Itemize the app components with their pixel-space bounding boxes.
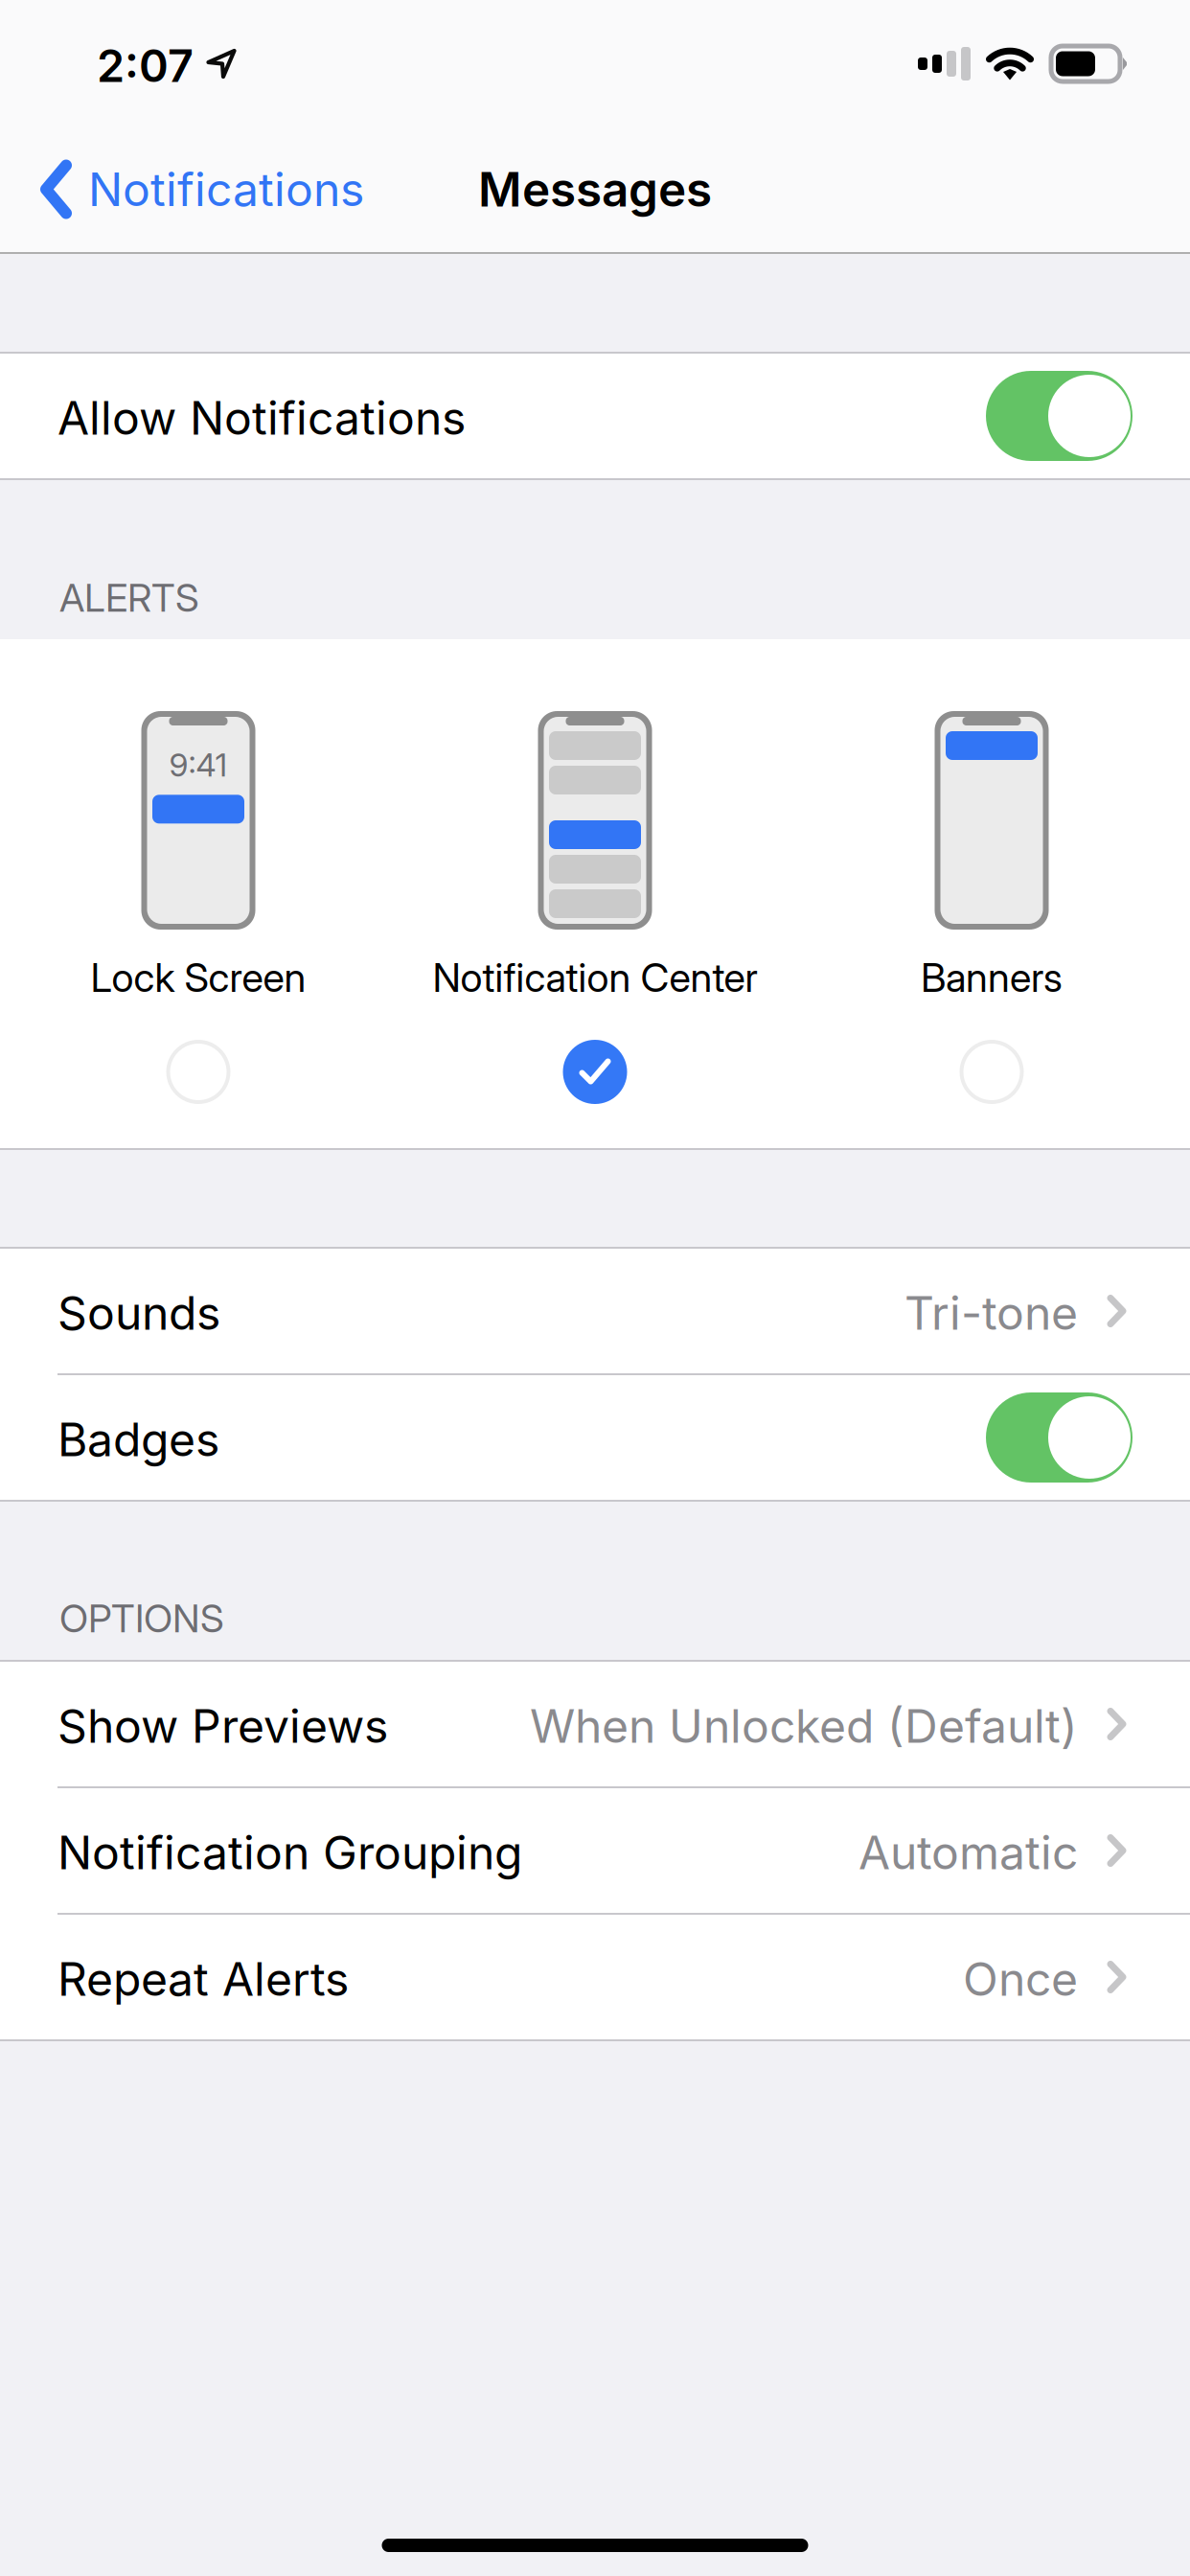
staticText: Notification Center [433, 954, 757, 1001]
staticText: Sounds [57, 1285, 220, 1341]
staticText: 9:41 [169, 746, 228, 784]
button[interactable]: Automatic [0, 1788, 1190, 1913]
staticText: Tri-tone [904, 1285, 1078, 1341]
button[interactable]: Tri-tone [0, 1249, 1190, 1373]
staticText: ALERTS [59, 575, 199, 621]
button[interactable]: Not selected [0, 711, 397, 1104]
button[interactable]: On [0, 1375, 1190, 1500]
button[interactable]: On [0, 354, 1190, 478]
staticText: Repeat Alerts [57, 1951, 349, 2007]
staticText: Lock Screen [91, 954, 306, 1001]
staticText: Badges [57, 1412, 219, 1467]
staticText: Notification Grouping [57, 1825, 522, 1880]
staticText: Allow Notifications [57, 390, 466, 446]
button[interactable]: Selected [397, 711, 793, 1104]
staticText: OPTIONS [59, 1595, 224, 1642]
staticText: Show Previews [57, 1698, 388, 1754]
button[interactable]: Once [0, 1915, 1190, 2039]
button[interactable]: Notifications [0, 137, 387, 242]
staticText: Notifications [88, 161, 364, 217]
staticText: 2:07 [97, 39, 194, 93]
staticText: Messages [478, 161, 712, 218]
staticText: Once [963, 1951, 1078, 2007]
staticText: When Unlocked (Default) [530, 1698, 1078, 1754]
button[interactable]: Not selected [793, 711, 1190, 1104]
staticText: Automatic [858, 1825, 1078, 1880]
button[interactable]: When Unlocked (Default) [0, 1662, 1190, 1786]
staticText: Banners [921, 954, 1063, 1001]
